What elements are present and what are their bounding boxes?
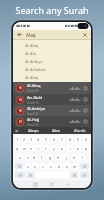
- button[interactable]: Alan: [45, 127, 68, 134]
- button[interactable]: Backspace: [80, 163, 89, 169]
- button[interactable]: Back: [59, 180, 75, 188]
- staticText: Al-Alaq: [25, 75, 39, 80]
- button[interactable]: Alaqa: [21, 127, 45, 134]
- button[interactable]: h: [55, 154, 61, 160]
- button[interactable]: Symbols: [15, 172, 25, 178]
- staticText: An-Nahl: [27, 95, 43, 100]
- staticText: d: [33, 155, 36, 160]
- button[interactable]: 7: [59, 136, 65, 142]
- button[interactable]: 87: [13, 116, 91, 127]
- button[interactable]: b: [56, 163, 62, 169]
- button[interactable]: Expand suggestions: [13, 127, 21, 134]
- button[interactable]: f: [39, 154, 45, 160]
- staticText: Al-Anbiya: [27, 106, 46, 111]
- button[interactable]: 96: [13, 82, 91, 94]
- staticText: j: [66, 155, 67, 160]
- staticText: Al-Ankabut: [25, 67, 46, 72]
- button[interactable]: 8: [67, 136, 73, 142]
- button[interactable]: 3: [29, 136, 34, 142]
- button[interactable]: x: [32, 163, 38, 169]
- button[interactable]: 4: [36, 136, 41, 142]
- staticText: s: [27, 155, 29, 160]
- button[interactable]: 5: [43, 136, 49, 142]
- button[interactable]: More options: [83, 86, 88, 91]
- staticText: p: [85, 146, 88, 151]
- staticText: Al-Alaq: [27, 83, 41, 88]
- button[interactable]: 2: [22, 136, 27, 142]
- button[interactable]: m: [72, 163, 78, 169]
- staticText: 90: [19, 109, 22, 113]
- button[interactable]: e: [29, 145, 34, 151]
- staticText: 5: [45, 137, 48, 142]
- button[interactable]: v: [48, 163, 54, 169]
- button[interactable]: w: [22, 145, 27, 151]
- staticText: w: [23, 146, 26, 151]
- button[interactable]: a: [18, 154, 23, 160]
- button[interactable]: r: [36, 145, 41, 151]
- button[interactable]: 93: [13, 94, 91, 105]
- button[interactable]: n: [64, 163, 70, 169]
- button[interactable]: g: [47, 154, 53, 160]
- button[interactable]: k: [71, 154, 77, 160]
- button[interactable]: Back: [13, 30, 91, 39]
- staticText: z: [27, 164, 29, 169]
- button[interactable]: l: [79, 154, 85, 160]
- staticText: Al-A'la: [25, 51, 37, 56]
- button[interactable]: d: [32, 154, 37, 160]
- staticText: 7: [61, 137, 64, 142]
- staticText: A'arah: [74, 128, 86, 133]
- button[interactable]: Clear: [81, 31, 88, 38]
- button[interactable]: More options: [83, 119, 88, 124]
- staticText: 87: [19, 120, 22, 124]
- button[interactable]: Emoji: [27, 172, 34, 178]
- staticText: r: [38, 146, 40, 151]
- button[interactable]: More options: [83, 108, 88, 113]
- button[interactable]: t: [43, 145, 49, 151]
- button[interactable]: z: [25, 163, 30, 169]
- button[interactable]: j: [63, 154, 69, 160]
- button[interactable]: Shift: [15, 163, 23, 169]
- button[interactable]: Period: [71, 172, 78, 178]
- button[interactable]: p: [83, 145, 89, 151]
- button[interactable]: A'arah: [68, 127, 91, 134]
- button[interactable]: Al-Anbiya: [13, 57, 91, 65]
- button[interactable]: Home: [43, 180, 59, 188]
- button[interactable]: i: [67, 145, 73, 151]
- button[interactable]: c: [40, 163, 46, 169]
- button[interactable]: 0: [83, 136, 89, 142]
- button[interactable]: 90: [13, 105, 91, 116]
- staticText: b: [58, 164, 61, 169]
- staticText: i: [70, 146, 71, 151]
- staticText: Search any Surah: [15, 4, 89, 16]
- staticText: Surah 16: [27, 101, 39, 105]
- button[interactable]: 9: [75, 136, 81, 142]
- button[interactable]: y: [51, 145, 57, 151]
- button[interactable]: Recents: [28, 180, 43, 188]
- staticText: 0: [85, 137, 88, 142]
- button[interactable]: 1: [15, 136, 20, 142]
- staticText: f: [41, 155, 43, 160]
- button[interactable]: u: [59, 145, 65, 151]
- button[interactable]: Search: [80, 172, 89, 178]
- staticText: g: [49, 155, 52, 160]
- staticText: Al-Alaq: [25, 43, 39, 48]
- button[interactable]: Back: [16, 31, 23, 38]
- button[interactable]: 6: [51, 136, 57, 142]
- button[interactable]: o: [75, 145, 81, 151]
- button[interactable]: s: [25, 154, 30, 160]
- button[interactable]: q: [15, 145, 20, 151]
- staticText: 6: [53, 137, 56, 142]
- staticText: Surah 22: [27, 123, 39, 127]
- button[interactable]: Al-Alaq: [13, 73, 91, 81]
- staticText: 1: [16, 137, 19, 142]
- staticText: 96: [19, 86, 22, 90]
- button[interactable]: Al-Ankabut: [13, 65, 91, 73]
- staticText: 93: [19, 98, 22, 102]
- button[interactable]: Al-A'la: [13, 49, 91, 57]
- button[interactable]: Al-Alaq: [13, 41, 91, 49]
- staticText: q: [16, 146, 19, 151]
- staticText: 8: [69, 137, 72, 142]
- staticText: l: [82, 155, 83, 160]
- button[interactable]: More options: [83, 97, 88, 102]
